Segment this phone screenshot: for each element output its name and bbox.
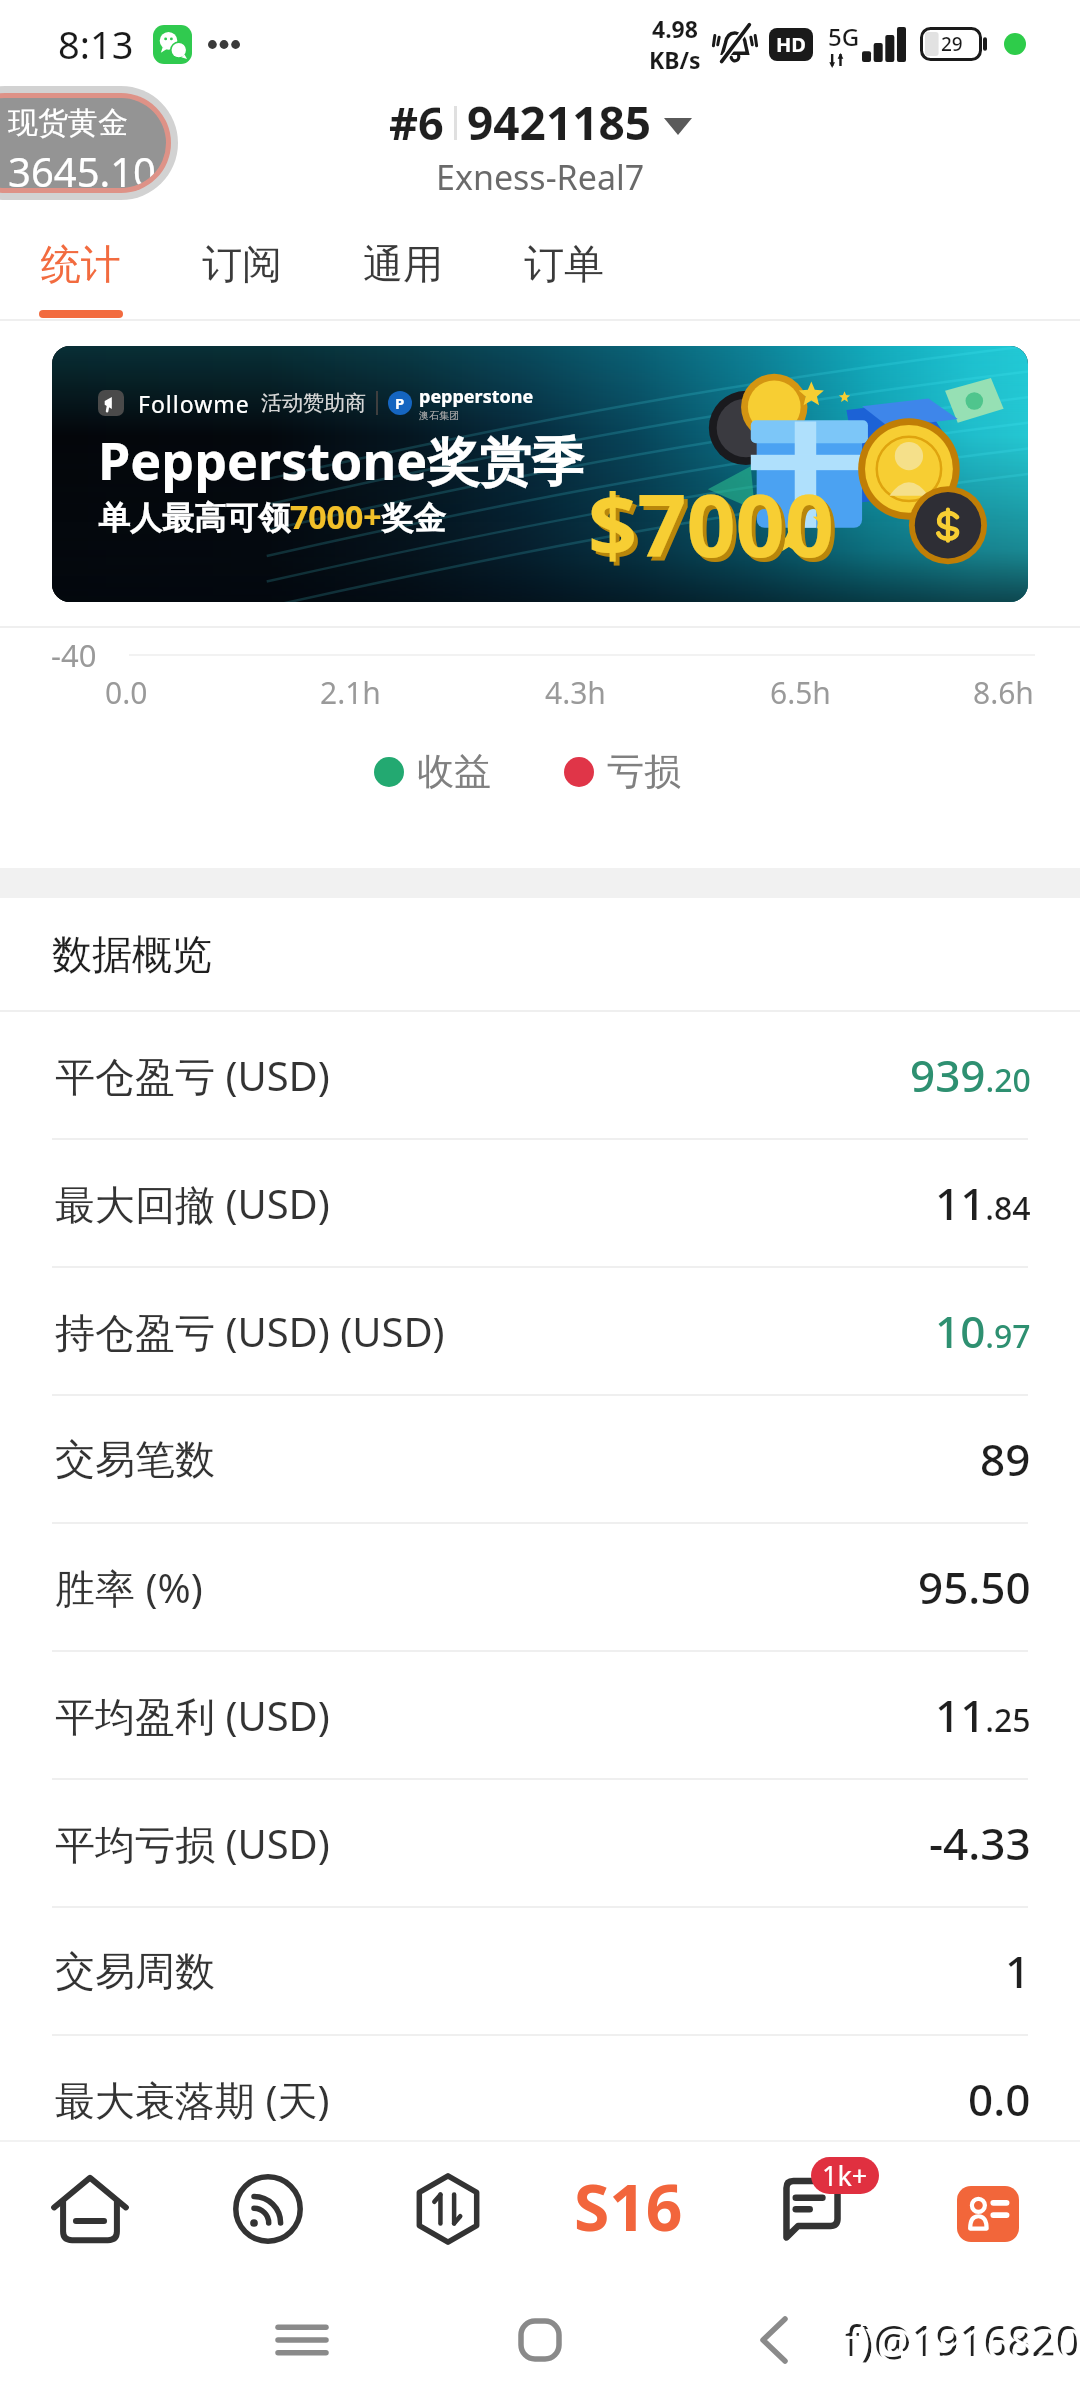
staticText: Followme [138, 388, 250, 419]
staticText: 交易笔数 [55, 1434, 215, 1484]
staticText: 4.3h [545, 672, 606, 713]
button[interactable]: 交易周数 [55, 1908, 1031, 2034]
button[interactable]: 胜率 (%) [55, 1524, 1031, 1650]
staticText: 单人最高可领7000+奖金 [98, 495, 446, 539]
button[interactable]: 通用 [322, 215, 483, 319]
button[interactable]: Recents [260, 2298, 344, 2382]
staticText: 11.25 [935, 1685, 1031, 1745]
staticText: 订阅 [202, 239, 282, 289]
button[interactable]: Discover [206, 2152, 330, 2276]
button[interactable]: Back [732, 2298, 816, 2382]
staticText: 最大衰落期 (天) [55, 2072, 330, 2127]
button[interactable]: S16 [566, 2152, 690, 2276]
staticText: P [395, 393, 405, 413]
staticText: 9421185 [467, 91, 652, 154]
staticText: 交易周数 [55, 1946, 215, 1996]
staticText: 收益 [417, 748, 491, 795]
staticText: 数据概览 [52, 929, 212, 979]
staticText: 0.0 [105, 672, 148, 713]
button[interactable]: 最大回撤 (USD) [55, 1140, 1031, 1266]
staticText: 11.84 [935, 1173, 1031, 1233]
button[interactable]: 最大衰落期 (天) [55, 2036, 1031, 2162]
staticText: 8:13 [58, 18, 134, 70]
staticText: 通用 [363, 239, 443, 289]
staticText: Exness-Real7 [436, 154, 645, 200]
staticText: 29 [941, 31, 963, 57]
staticText: #6 [389, 92, 444, 153]
staticText: Pepperstone奖赏季 [98, 424, 584, 495]
button[interactable]: $7000 [52, 346, 1028, 602]
staticText: 4.98 [652, 13, 698, 44]
staticText: HD [776, 31, 806, 58]
button[interactable]: 持仓盈亏 (USD) (USD) [55, 1268, 1031, 1394]
button[interactable]: Gold price widget [0, 98, 166, 188]
staticText: 1k+ [822, 2157, 868, 2194]
button[interactable]: Trade [386, 2152, 510, 2276]
staticText: 939.20 [910, 1045, 1031, 1105]
staticText: S16 [574, 2163, 683, 2250]
staticText: 现货黄金 [8, 104, 128, 142]
staticText: 3645.10 [8, 144, 156, 188]
staticText: 5G [828, 20, 860, 53]
staticText: 0.0 [968, 2069, 1031, 2129]
button[interactable]: Home [498, 2298, 582, 2382]
staticText: 2.1h [320, 672, 381, 713]
staticText: 订单 [524, 239, 604, 289]
staticText: 统计 [41, 239, 121, 289]
button[interactable]: Home [28, 2152, 152, 2276]
staticText: KB/s [649, 44, 701, 75]
staticText: 最大回撤 (USD) [55, 1176, 330, 1231]
button[interactable]: 平均盈利 (USD) [55, 1652, 1031, 1778]
staticText: 澳石集团 [419, 409, 459, 422]
button[interactable]: #6 [385, 91, 696, 154]
staticText: 活动赞助商 [261, 390, 366, 416]
staticText: f)@1916820 [848, 2314, 1080, 2371]
staticText: $7000 [592, 469, 838, 586]
button[interactable]: 平均亏损 (USD) [55, 1780, 1031, 1906]
staticText: 亏损 [607, 748, 681, 795]
staticText: 95.50 [918, 1557, 1031, 1617]
staticText: -40 [51, 634, 97, 676]
staticText: 平均盈利 (USD) [55, 1688, 330, 1743]
button[interactable]: 订单 [483, 215, 644, 319]
staticText: pepperstone [419, 384, 534, 409]
staticText: 1 [1005, 1941, 1031, 2001]
staticText: f)@1916820 [845, 2311, 1080, 2368]
staticText: -4.33 [929, 1813, 1031, 1873]
staticText: 平均亏损 (USD) [55, 1816, 330, 1871]
button[interactable]: 交易笔数 [55, 1396, 1031, 1522]
staticText: 持仓盈亏 (USD) (USD) [55, 1304, 445, 1359]
staticText: 6.5h [770, 672, 831, 713]
staticText: 8.6h [973, 672, 1034, 713]
button[interactable]: Profile [926, 2152, 1050, 2276]
button[interactable]: 统计 [0, 215, 161, 319]
staticText: 胜率 (%) [55, 1560, 203, 1615]
staticText: 10.97 [935, 1301, 1031, 1361]
button[interactable]: 订阅 [161, 215, 322, 319]
staticText: $7000 [588, 465, 834, 582]
staticText: 平仓盈亏 (USD) [55, 1048, 330, 1103]
button[interactable]: Messages [746, 2152, 870, 2276]
staticText: 89 [980, 1429, 1031, 1489]
button[interactable]: 平仓盈亏 (USD) [55, 1012, 1031, 1138]
